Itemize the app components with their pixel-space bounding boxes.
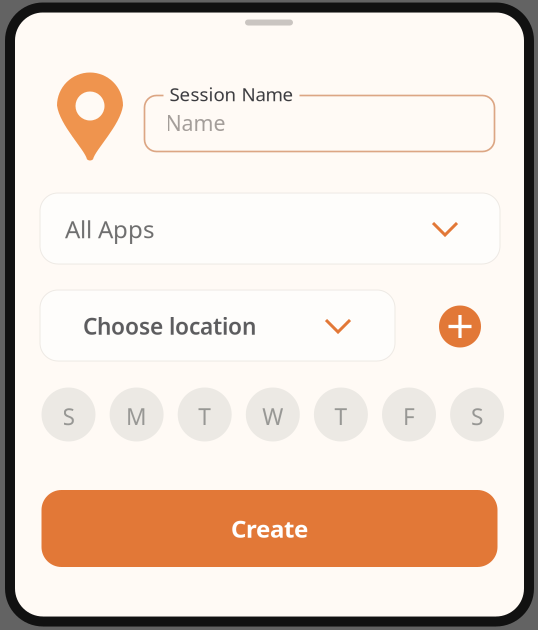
button[interactable]: Add location — [439, 305, 481, 347]
button[interactable]: T — [178, 387, 232, 441]
staticText: T — [334, 401, 347, 431]
staticText: S — [471, 401, 483, 431]
staticText: W — [262, 401, 283, 431]
button[interactable]: F — [382, 387, 436, 441]
staticText: Session Name — [169, 81, 293, 106]
button[interactable]: W — [246, 387, 300, 441]
button[interactable]: T — [314, 387, 368, 441]
staticText: M — [126, 401, 147, 431]
button[interactable]: S — [41, 387, 95, 441]
staticText: S — [62, 401, 74, 431]
staticText: All Apps — [65, 213, 154, 245]
button[interactable]: M — [110, 387, 164, 441]
staticText: Name — [165, 108, 225, 137]
button[interactable]: All Apps — [40, 193, 500, 264]
button[interactable]: Create — [41, 490, 497, 567]
staticText: Choose location — [83, 311, 256, 341]
staticText: T — [198, 401, 211, 431]
staticText: Create — [231, 513, 308, 544]
button[interactable]: Choose location — [40, 290, 395, 361]
button[interactable]: Name — [144, 95, 494, 151]
button[interactable]: S — [450, 387, 504, 441]
staticText: F — [403, 401, 415, 431]
